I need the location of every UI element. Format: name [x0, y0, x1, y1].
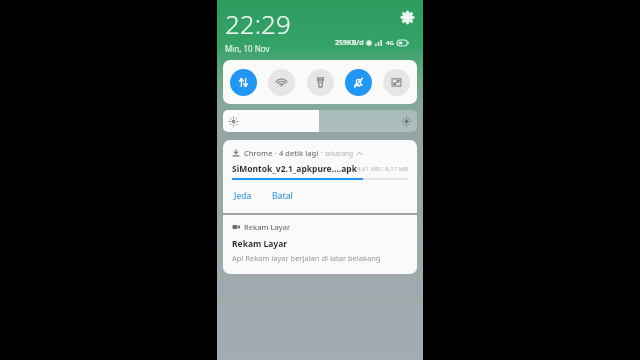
- button[interactable]: Brightness: [223, 110, 417, 132]
- staticText: Rekam Layar: [232, 238, 288, 250]
- staticText: 4 detik lagi: [279, 148, 319, 158]
- staticText: ·: [273, 148, 279, 158]
- button[interactable]: Flashlight: [307, 69, 334, 96]
- button[interactable]: Screenshot: [383, 69, 410, 96]
- button[interactable]: Jeda: [232, 189, 254, 203]
- staticText: 4,61 MB / 6,17 MB: [357, 165, 408, 173]
- staticText: 4G: [386, 39, 394, 47]
- staticText: 22:29: [225, 6, 291, 41]
- button[interactable]: Batal: [270, 189, 295, 203]
- button[interactable]: Rekam Layar: [223, 215, 417, 274]
- staticText: SiMontok_v2.1_apkpure....apk: [232, 163, 357, 175]
- staticText: Min, 10 Nov: [225, 43, 270, 54]
- staticText: ·: [319, 148, 325, 158]
- button[interactable]: Chrome: [223, 140, 417, 213]
- staticText: Chrome: [244, 148, 273, 158]
- button[interactable]: Mobile data: [230, 69, 257, 96]
- button[interactable]: Silent: [345, 69, 372, 96]
- staticText: Batal: [272, 190, 293, 202]
- staticText: Apl Rekam layar berjalan di latar belaka…: [232, 253, 381, 263]
- staticText: 259KB/d: [335, 38, 364, 48]
- staticText: sekarang: [325, 149, 354, 158]
- button[interactable]: Settings: [397, 7, 417, 27]
- staticText: Jeda: [234, 190, 252, 202]
- staticText: Rekam Layar: [244, 222, 291, 232]
- button[interactable]: Wi-Fi: [268, 69, 295, 96]
